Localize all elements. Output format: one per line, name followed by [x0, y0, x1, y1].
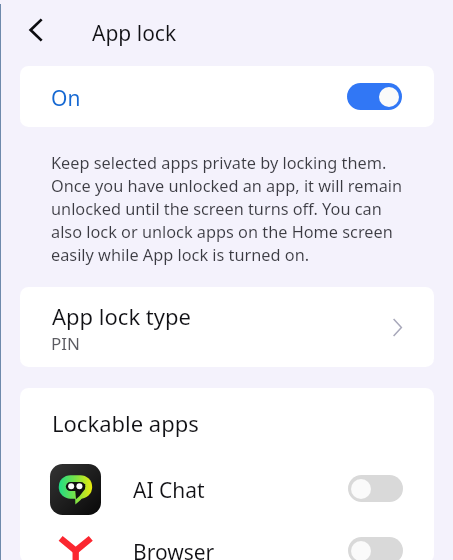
staticText: Keep selected apps private by locking th…: [51, 152, 407, 266]
button[interactable]: App lock type: [20, 287, 434, 367]
button[interactable]: Browser off: [348, 537, 403, 560]
staticText: PIN: [51, 332, 80, 355]
button[interactable]: AI Chat off: [348, 475, 403, 502]
staticText: App lock: [92, 19, 177, 48]
staticText: AI Chat: [133, 476, 205, 505]
button[interactable]: Navigate up: [16, 10, 56, 50]
button[interactable]: Browser: [20, 510, 434, 560]
staticText: Browser: [133, 538, 215, 560]
button[interactable]: On: [20, 66, 434, 127]
staticText: Lockable apps: [52, 408, 199, 438]
staticText: On: [51, 84, 81, 113]
button[interactable]: AI Chat: [20, 448, 434, 510]
button[interactable]: App lock on: [347, 83, 402, 110]
staticText: App lock type: [52, 301, 191, 331]
